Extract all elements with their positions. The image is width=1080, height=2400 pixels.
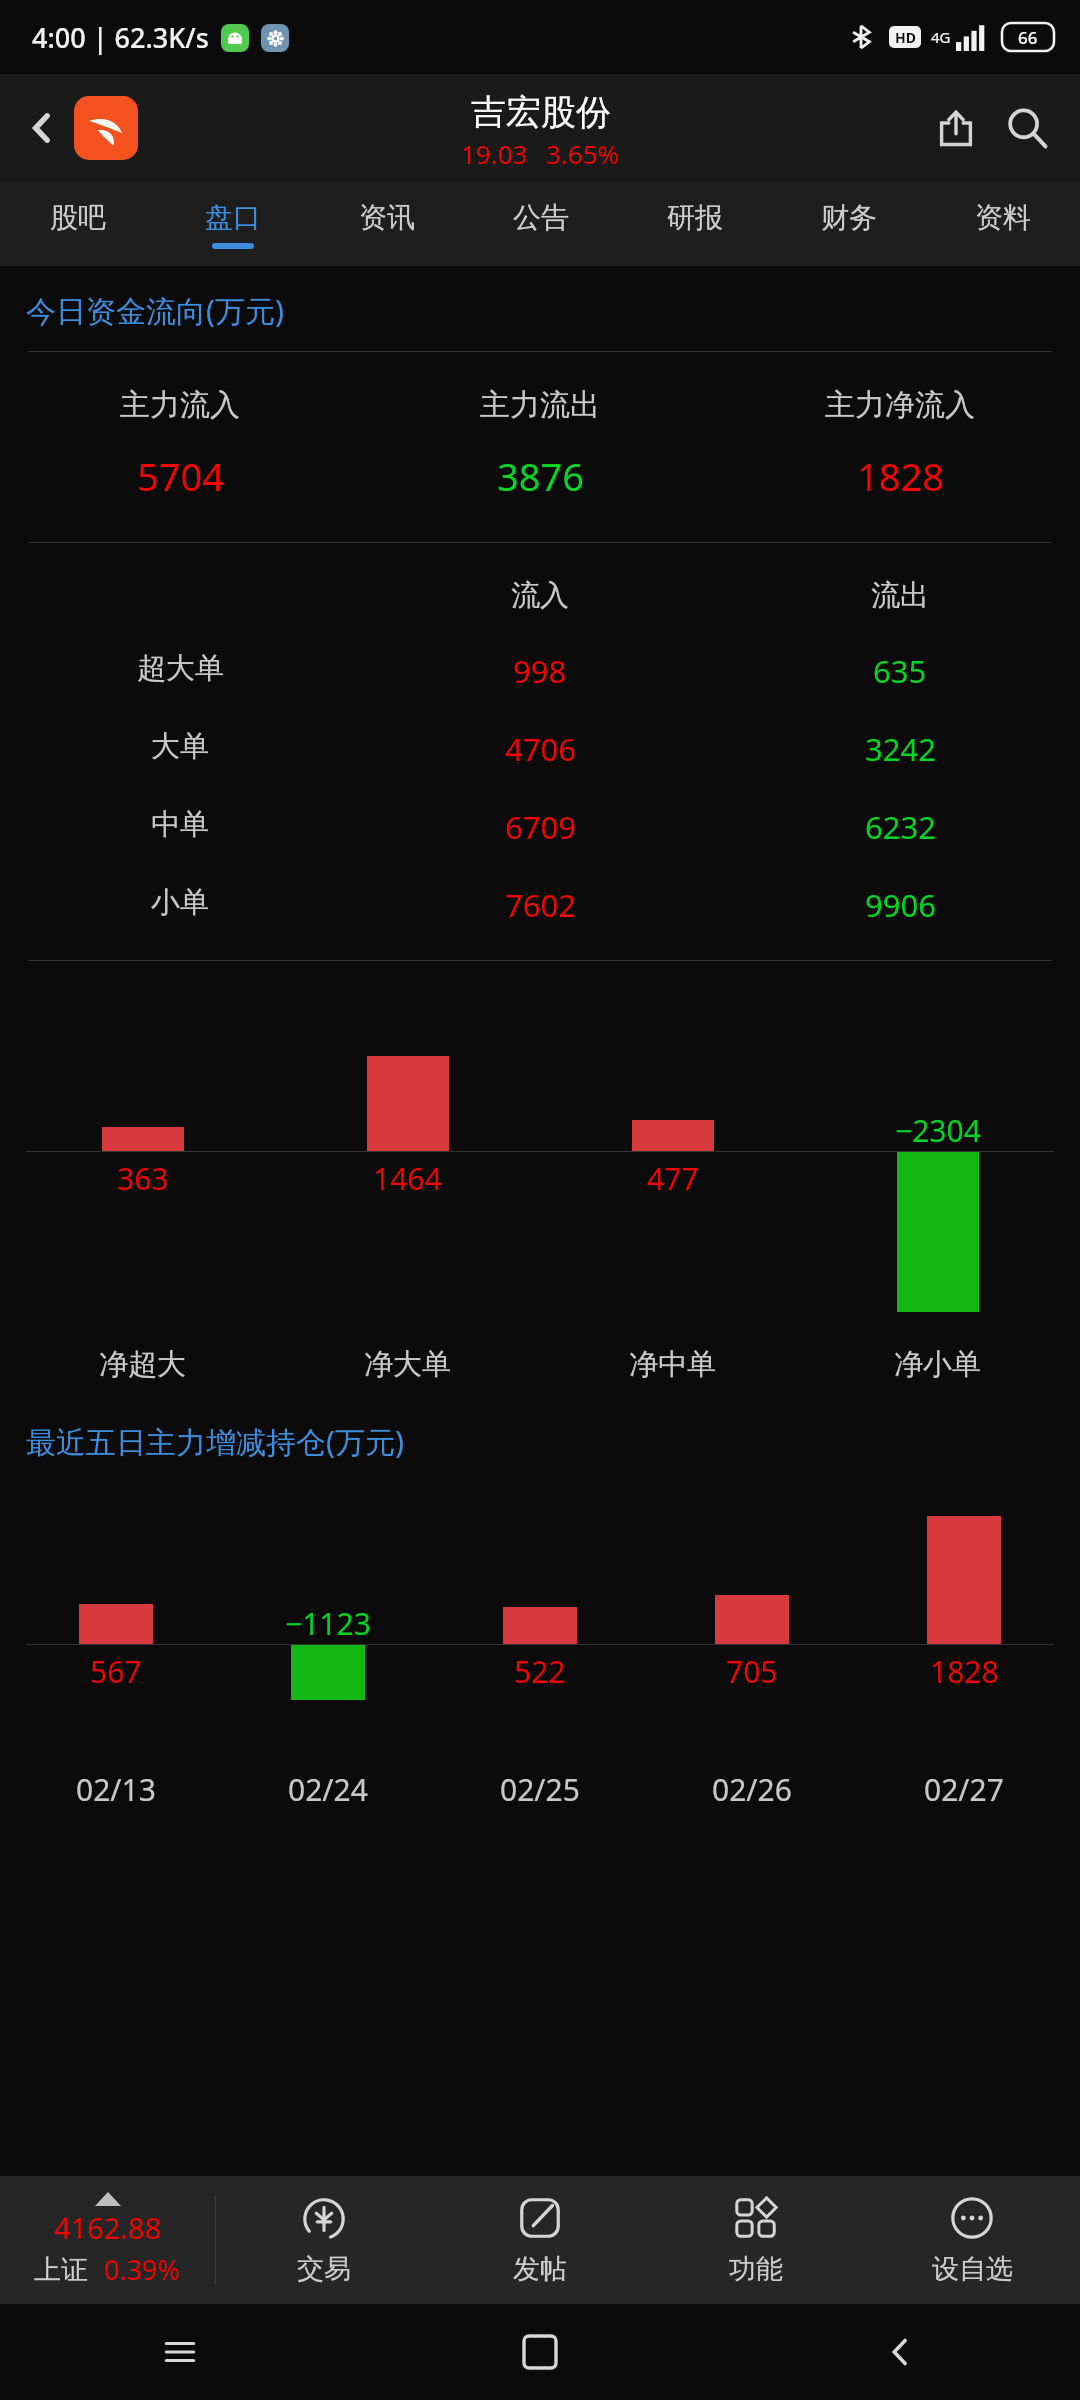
button[interactable]: 盘口 (155, 182, 310, 266)
staticText: 3.65% (546, 136, 620, 171)
staticText: 财务 (821, 200, 877, 235)
staticText: 19.03 (461, 136, 528, 171)
staticText: 02/27 (924, 1769, 1004, 1810)
staticText: 6232 (865, 806, 936, 848)
button[interactable]: Home (360, 2304, 720, 2400)
button[interactable]: 财务 (772, 182, 926, 266)
staticText: 1464 (373, 1158, 442, 1199)
staticText: 最近五日主力增减持仓(万元) (26, 1421, 404, 1462)
staticText: 4706 (505, 728, 576, 770)
button[interactable]: Recents (0, 2304, 360, 2400)
staticText: 635 (873, 650, 927, 692)
button[interactable]: 研报 (618, 182, 772, 266)
staticText: 小单 (151, 884, 209, 921)
staticText: 主力流入 (120, 386, 240, 424)
button[interactable]: 公告 (464, 182, 618, 266)
button[interactable]: 功能 (648, 2176, 864, 2304)
staticText: 设自选 (932, 2252, 1013, 2286)
staticText: 上证 (34, 2253, 88, 2287)
staticText: 吉宏股份 (471, 90, 611, 134)
staticText: 净超大 (99, 1346, 186, 1383)
button[interactable]: 交易 (216, 2176, 432, 2304)
staticText: 0.39% (104, 2251, 181, 2288)
staticText: 发帖 (513, 2252, 567, 2286)
staticText: 流出 (871, 577, 929, 614)
staticText: HD (895, 28, 916, 47)
staticText: 5704 (137, 450, 224, 502)
staticText: 今日资金流向(万元) (26, 290, 284, 331)
staticText: 66 (1018, 26, 1038, 49)
staticText: 超大单 (137, 650, 224, 687)
staticText: 功能 (729, 2252, 783, 2286)
staticText: 1828 (930, 1651, 999, 1692)
staticText: 4G (931, 27, 951, 47)
button[interactable]: Back (14, 100, 70, 156)
button[interactable]: 资讯 (310, 182, 464, 266)
staticText: 02/26 (712, 1769, 792, 1810)
staticText: 4162.88 (54, 2208, 162, 2247)
staticText: 705 (726, 1651, 778, 1692)
staticText: 股吧 (50, 200, 106, 235)
button[interactable]: 股吧 (0, 182, 155, 266)
staticText: 资料 (975, 200, 1031, 235)
staticText: 盘口 (205, 200, 261, 235)
button[interactable]: 发帖 (432, 2176, 648, 2304)
staticText: 净中单 (629, 1346, 716, 1383)
staticText: 大单 (151, 728, 209, 765)
staticText: −2304 (895, 1110, 981, 1151)
staticText: 资讯 (359, 200, 415, 235)
staticText: 主力流出 (480, 386, 600, 424)
button[interactable]: 资料 (926, 182, 1080, 266)
staticText: 522 (514, 1651, 566, 1692)
staticText: 02/25 (500, 1769, 580, 1810)
staticText: 3242 (865, 728, 936, 770)
staticText: 研报 (667, 200, 723, 235)
button[interactable]: Back (720, 2304, 1080, 2400)
button[interactable]: Home (74, 96, 138, 160)
staticText: 6709 (505, 806, 576, 848)
button[interactable]: Share (924, 96, 988, 160)
staticText: 中单 (151, 806, 209, 843)
staticText: 477 (647, 1158, 699, 1199)
staticText: −1123 (285, 1603, 371, 1644)
staticText: 1828 (857, 450, 944, 502)
staticText: 净小单 (894, 1346, 981, 1383)
staticText: 567 (90, 1651, 142, 1692)
staticText: 公告 (513, 200, 569, 235)
staticText: 净大单 (364, 1346, 451, 1383)
button[interactable]: Search (992, 93, 1062, 163)
staticText: 主力净流入 (825, 386, 975, 424)
staticText: 02/24 (288, 1769, 368, 1810)
button[interactable]: 设自选 (864, 2176, 1080, 2304)
staticText: 流入 (511, 577, 569, 614)
staticText: 3876 (497, 450, 584, 502)
staticText: 9906 (865, 884, 936, 926)
staticText: 363 (117, 1158, 169, 1199)
staticText: 4:00 | 62.3K/s (32, 19, 209, 56)
button[interactable]: 4162.88 (0, 2176, 215, 2304)
staticText: 7602 (505, 884, 576, 926)
staticText: 02/13 (76, 1769, 156, 1810)
staticText: 998 (513, 650, 567, 692)
staticText: 交易 (297, 2252, 351, 2286)
